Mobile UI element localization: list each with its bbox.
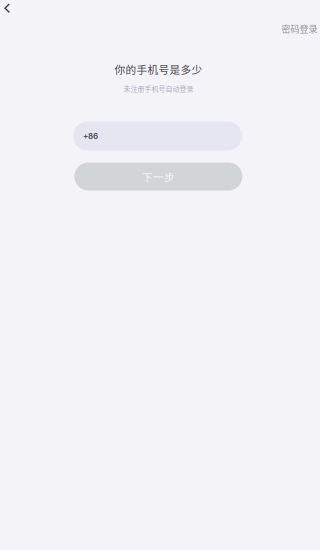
button[interactable]: Phone number xyxy=(73,121,242,150)
button[interactable]: Back xyxy=(0,0,24,22)
staticText: +86 xyxy=(83,131,98,141)
staticText: 下一步 xyxy=(142,169,175,184)
staticText: 密码登录 xyxy=(281,22,317,35)
button[interactable]: 密码登录 xyxy=(275,16,319,41)
button[interactable]: 下一步 xyxy=(74,162,242,190)
staticText: 未注册手机号自动登录 xyxy=(123,83,193,93)
staticText: 你的手机号是多少 xyxy=(114,61,202,77)
